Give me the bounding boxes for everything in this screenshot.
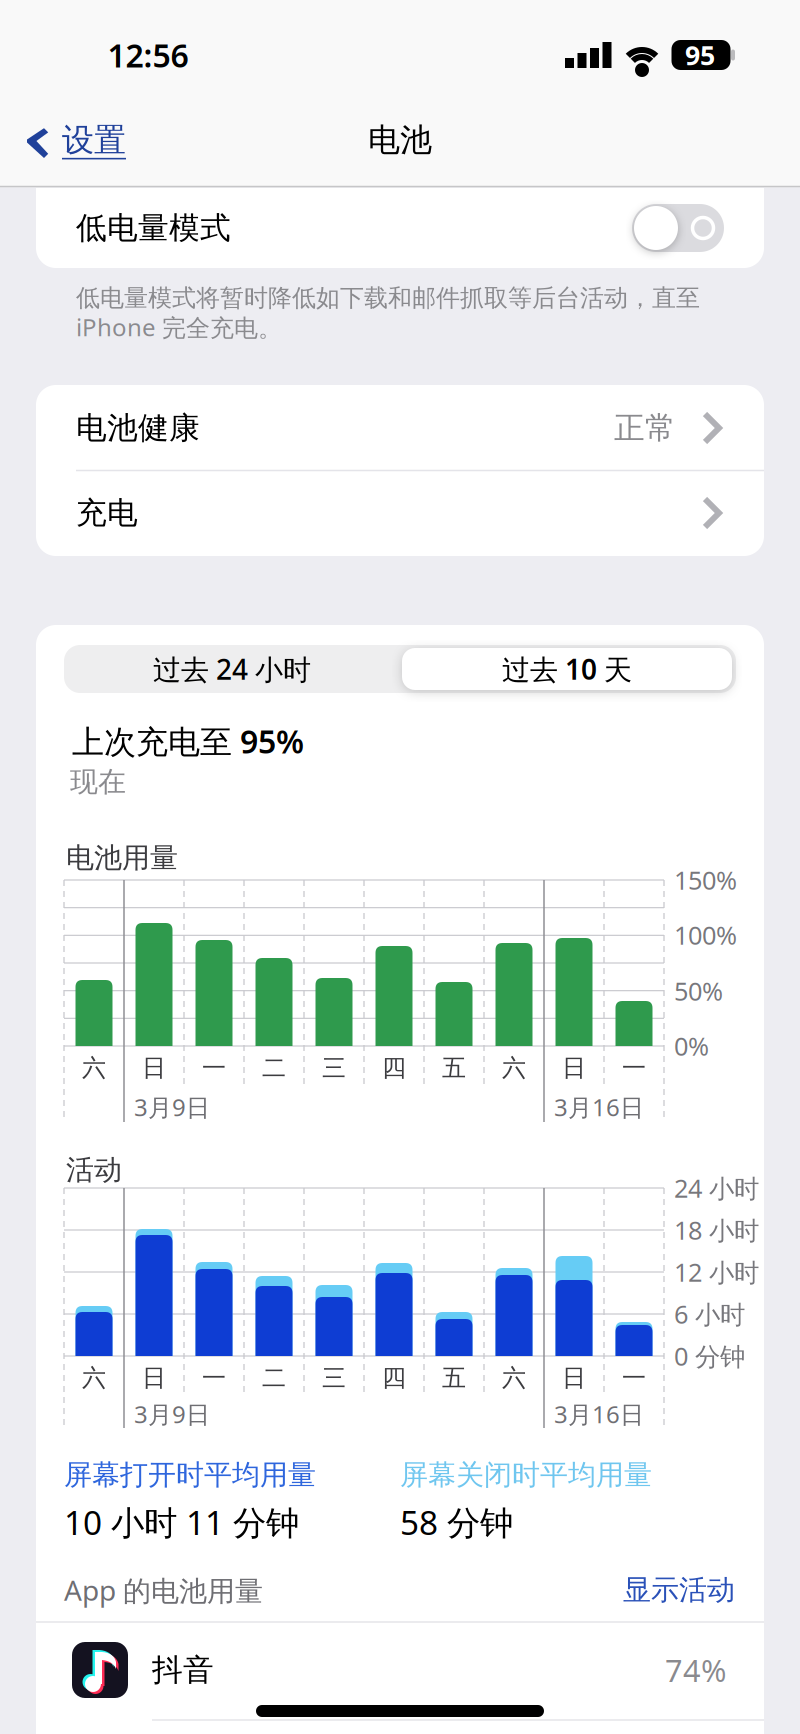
staticText: 六	[502, 1053, 526, 1083]
staticText: 0%	[674, 1029, 709, 1063]
staticText: 五	[442, 1053, 466, 1083]
staticText: 屏幕打开时平均用量	[64, 1458, 316, 1492]
staticText: 三	[322, 1053, 346, 1083]
staticText: 日	[142, 1363, 166, 1393]
staticText: 电池用量	[66, 841, 178, 875]
staticText: 3月16日	[554, 1398, 644, 1430]
staticText: 低电量模式	[76, 209, 231, 247]
staticText: 正常	[614, 409, 676, 447]
staticText: 0 分钟	[674, 1339, 745, 1373]
staticText: 活动	[66, 1153, 122, 1187]
staticText: 24 小时	[674, 1171, 759, 1205]
staticText: 设置	[62, 120, 126, 160]
staticText: 日	[562, 1053, 586, 1083]
staticText: 50%	[674, 974, 723, 1008]
staticText: 电池	[368, 120, 432, 160]
staticText: App 的电池用量	[64, 1571, 263, 1609]
staticText: 日	[142, 1053, 166, 1083]
staticText: 95	[685, 37, 715, 73]
staticText: 150%	[674, 863, 737, 897]
staticText: 3月9日	[134, 1091, 210, 1123]
staticText: 74%	[665, 1650, 726, 1690]
staticText: 3月9日	[134, 1398, 210, 1430]
staticText: 过去 24 小时	[153, 650, 311, 688]
staticText: 低电量模式将暂时降低如下载和邮件抓取等后台活动，直至	[76, 283, 700, 313]
staticText: 六	[82, 1053, 106, 1083]
staticText: 3月16日	[554, 1091, 644, 1123]
staticText: 显示活动	[623, 1573, 735, 1607]
staticText: 四	[382, 1053, 406, 1083]
staticText: 抖音	[152, 1651, 214, 1689]
staticText: 一	[622, 1363, 646, 1393]
staticText: 58 分钟	[400, 1500, 513, 1544]
staticText: 充电	[76, 494, 138, 532]
staticText: 六	[82, 1363, 106, 1393]
staticText: 一	[202, 1053, 226, 1083]
staticText: 五	[442, 1363, 466, 1393]
staticText: 一	[622, 1053, 646, 1083]
staticText: 现在	[70, 765, 126, 799]
staticText: 上次充电至 95%	[72, 720, 304, 762]
staticText: 12:56	[107, 34, 188, 76]
staticText: 屏幕关闭时平均用量	[400, 1458, 652, 1492]
staticText: 100%	[674, 918, 737, 952]
staticText: 二	[262, 1053, 286, 1083]
staticText: 12 小时	[674, 1255, 759, 1289]
staticText: 二	[262, 1363, 286, 1393]
staticText: 六	[502, 1363, 526, 1393]
staticText: 18 小时	[674, 1213, 759, 1247]
staticText: 四	[382, 1363, 406, 1393]
staticText: 日	[562, 1363, 586, 1393]
staticText: 一	[202, 1363, 226, 1393]
staticText: iPhone 完全充电。	[76, 311, 282, 343]
staticText: 三	[322, 1363, 346, 1393]
staticText: 10 小时 11 分钟	[64, 1500, 299, 1544]
staticText: 6 小时	[674, 1297, 745, 1331]
staticText: 电池健康	[76, 409, 200, 447]
staticText: 过去 10 天	[502, 650, 632, 688]
